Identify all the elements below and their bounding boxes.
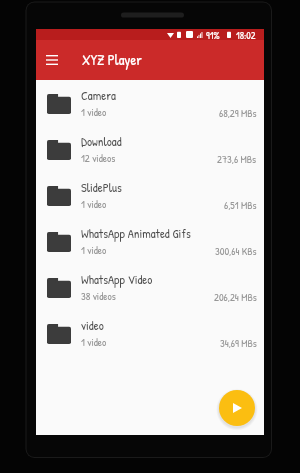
staticText: 34,69 MBs (220, 336, 257, 350)
staticText: 273,6 MBs (217, 152, 257, 166)
staticText: 6,51 MBs (224, 198, 257, 212)
button[interactable]: SlidePlus (36, 173, 264, 219)
staticText: 12 videos (81, 151, 116, 165)
staticText: 1 video (81, 105, 107, 119)
staticText: SlidePlus (81, 179, 122, 196)
button[interactable]: video (36, 311, 264, 357)
button[interactable]: Navigation menu (36, 44, 68, 76)
staticText: 1 video (81, 335, 107, 349)
staticText: 38 videos (81, 289, 116, 303)
staticText: 1 video (81, 197, 107, 211)
staticText: XYZ Player (82, 50, 142, 70)
staticText: 68,29 MBs (219, 106, 257, 120)
staticText: 206,24 MBs (214, 290, 257, 304)
staticText: Download (81, 133, 122, 150)
staticText: 300,64 KBs (215, 244, 257, 258)
staticText: 18:02 (236, 29, 256, 40)
button[interactable]: Download (36, 127, 264, 173)
staticText: video (81, 317, 104, 334)
button[interactable]: WhatsApp Video (36, 265, 264, 311)
staticText: 91% (206, 29, 220, 40)
button[interactable]: WhatsApp Animated Gifs (36, 219, 264, 265)
staticText: Camera (81, 87, 116, 104)
button[interactable]: Camera (36, 81, 264, 127)
staticText: WhatsApp Video (81, 271, 153, 288)
staticText: WhatsApp Animated Gifs (81, 225, 191, 242)
staticText: 1 video (81, 243, 107, 257)
button[interactable]: Play (219, 390, 255, 426)
